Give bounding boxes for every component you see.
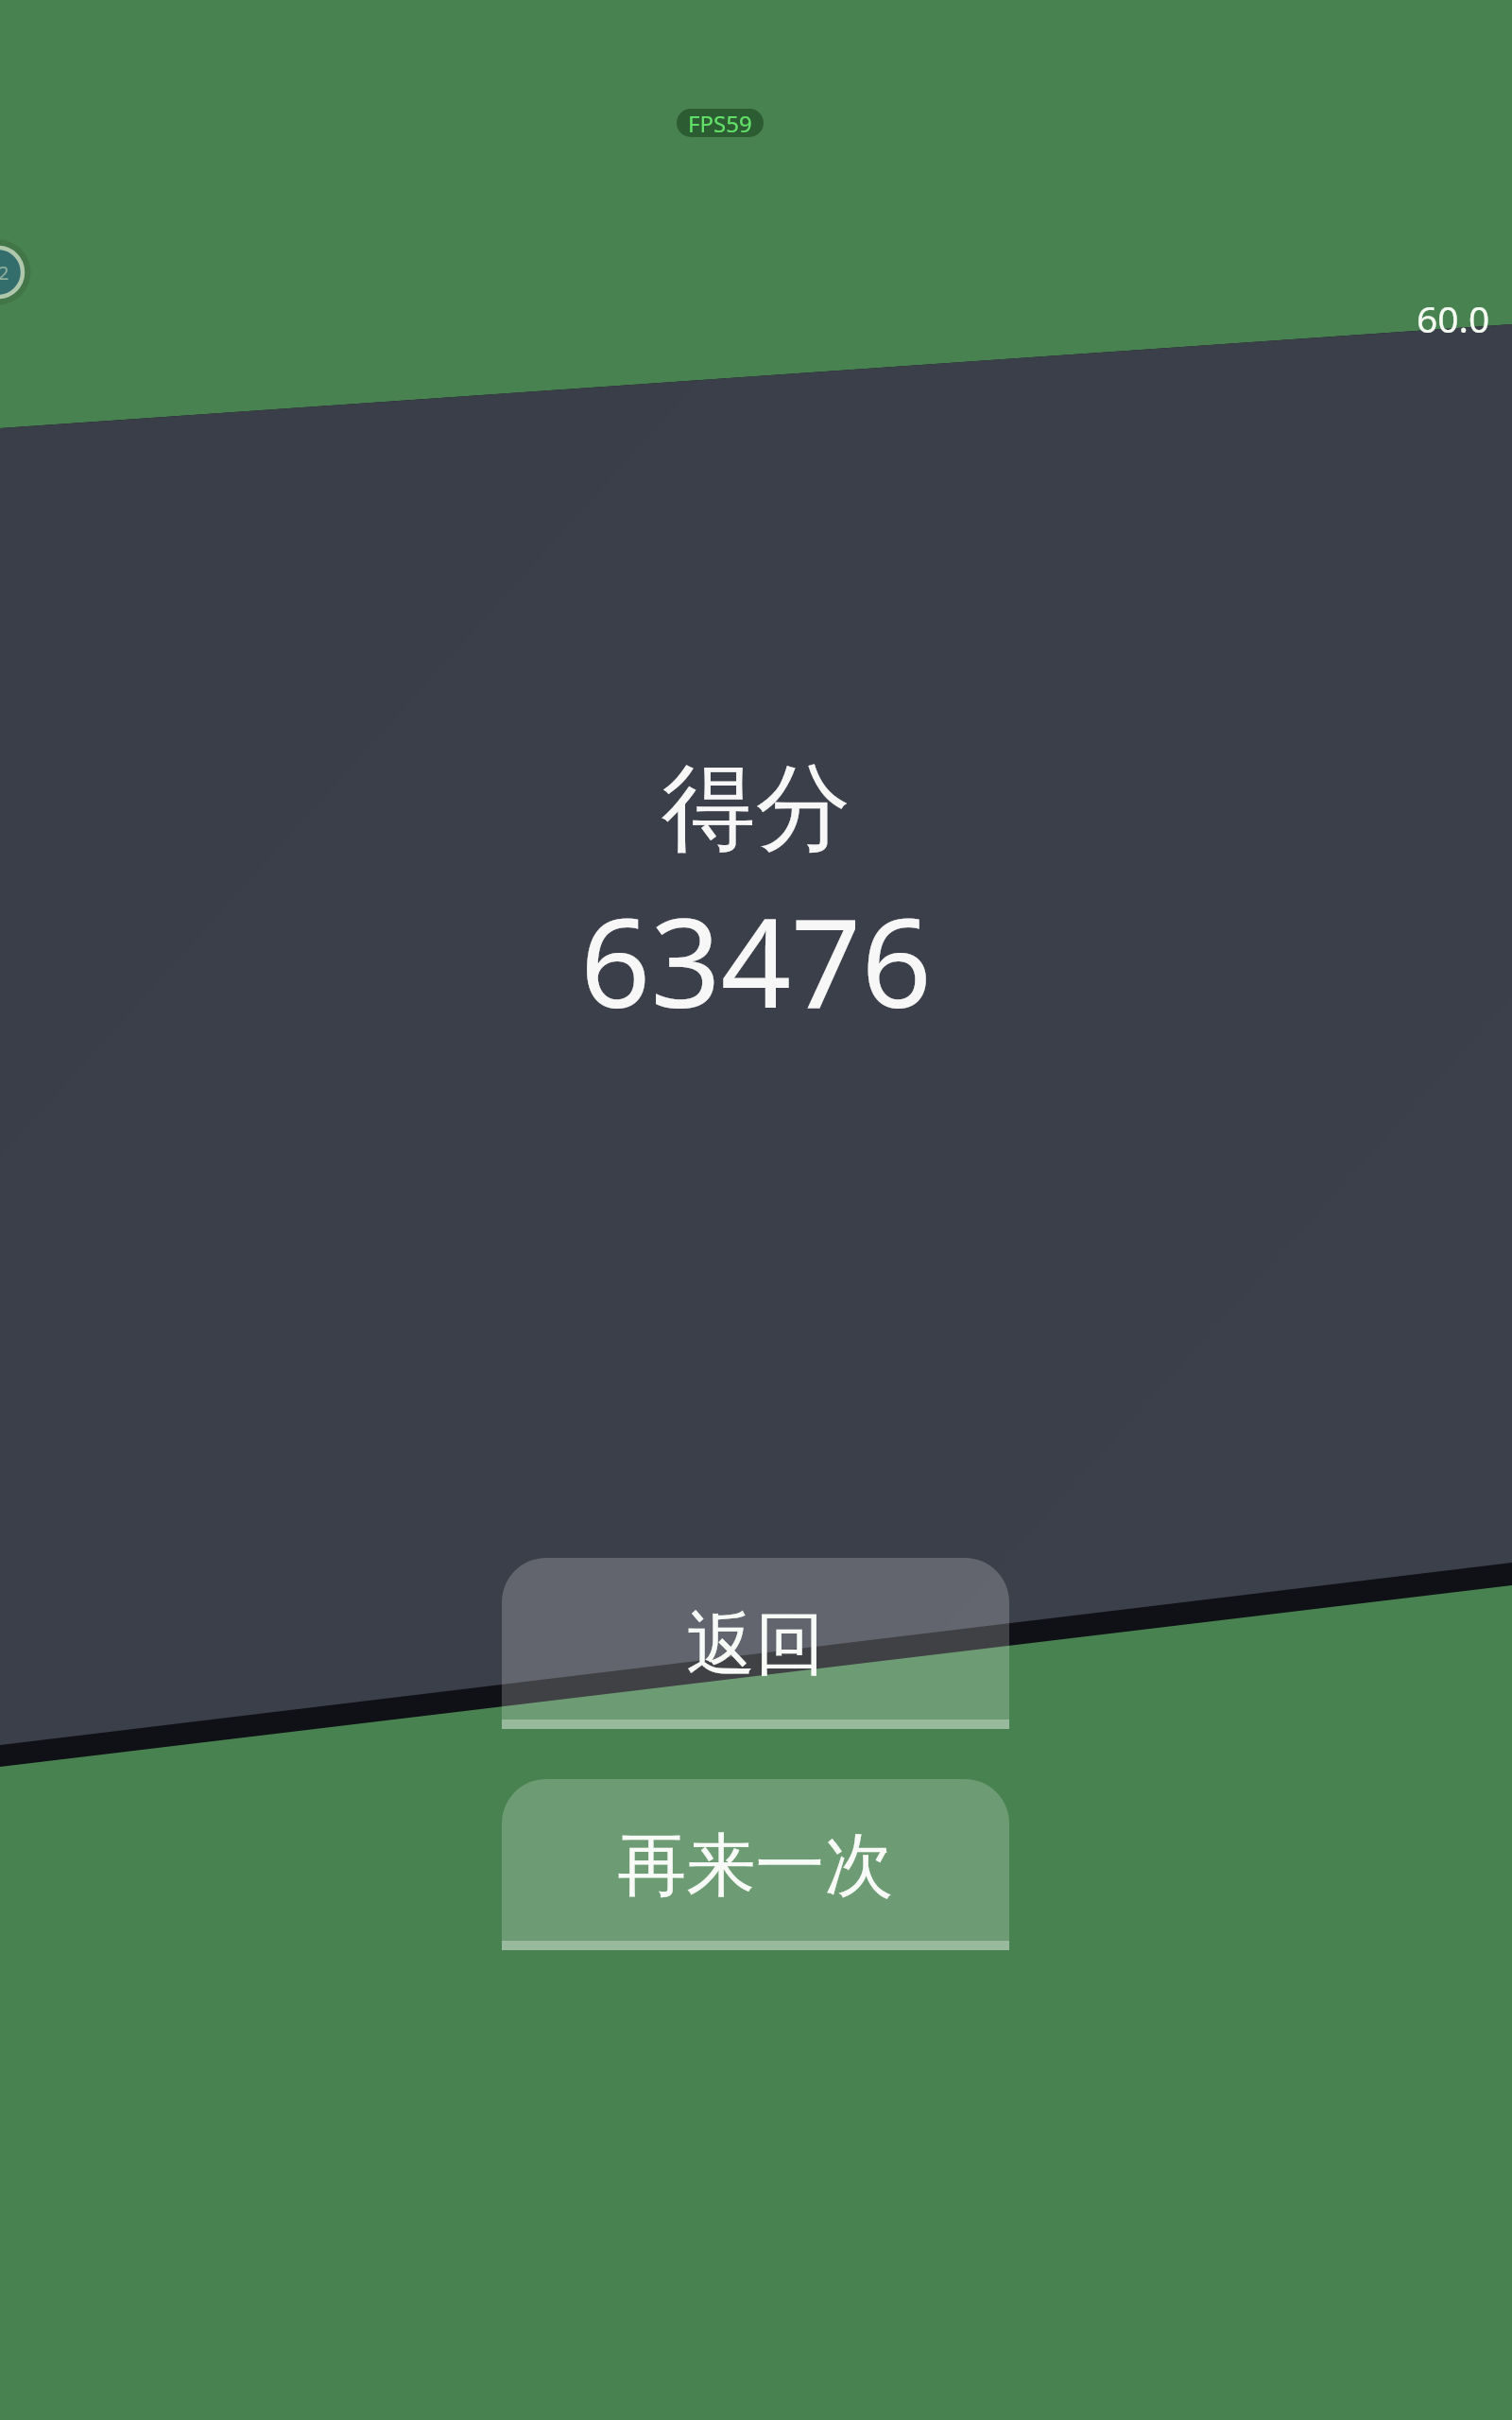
button[interactable]: 返回 (502, 1558, 1009, 1729)
button[interactable]: 再来一次 (502, 1779, 1009, 1950)
